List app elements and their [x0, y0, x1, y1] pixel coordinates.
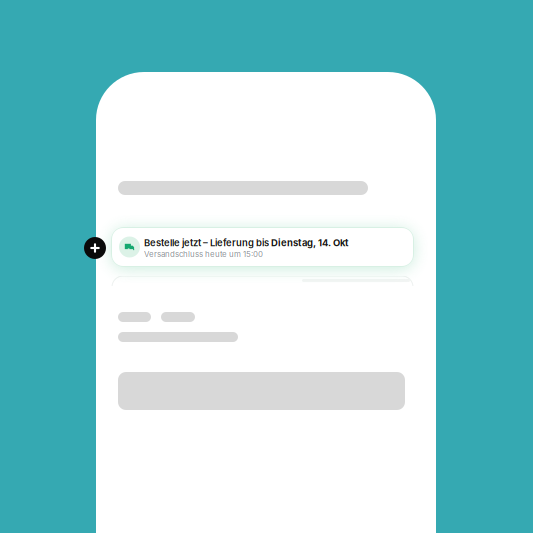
staticText: Versandschluss heute um 15:00 — [144, 249, 263, 259]
staticText: Bestelle jetzt – Lieferung bis Dienstag,… — [144, 237, 348, 248]
button[interactable]: Bestelle jetzt – Lieferung bis Dienstag,… — [112, 228, 413, 266]
button[interactable]: Add — [84, 237, 106, 259]
